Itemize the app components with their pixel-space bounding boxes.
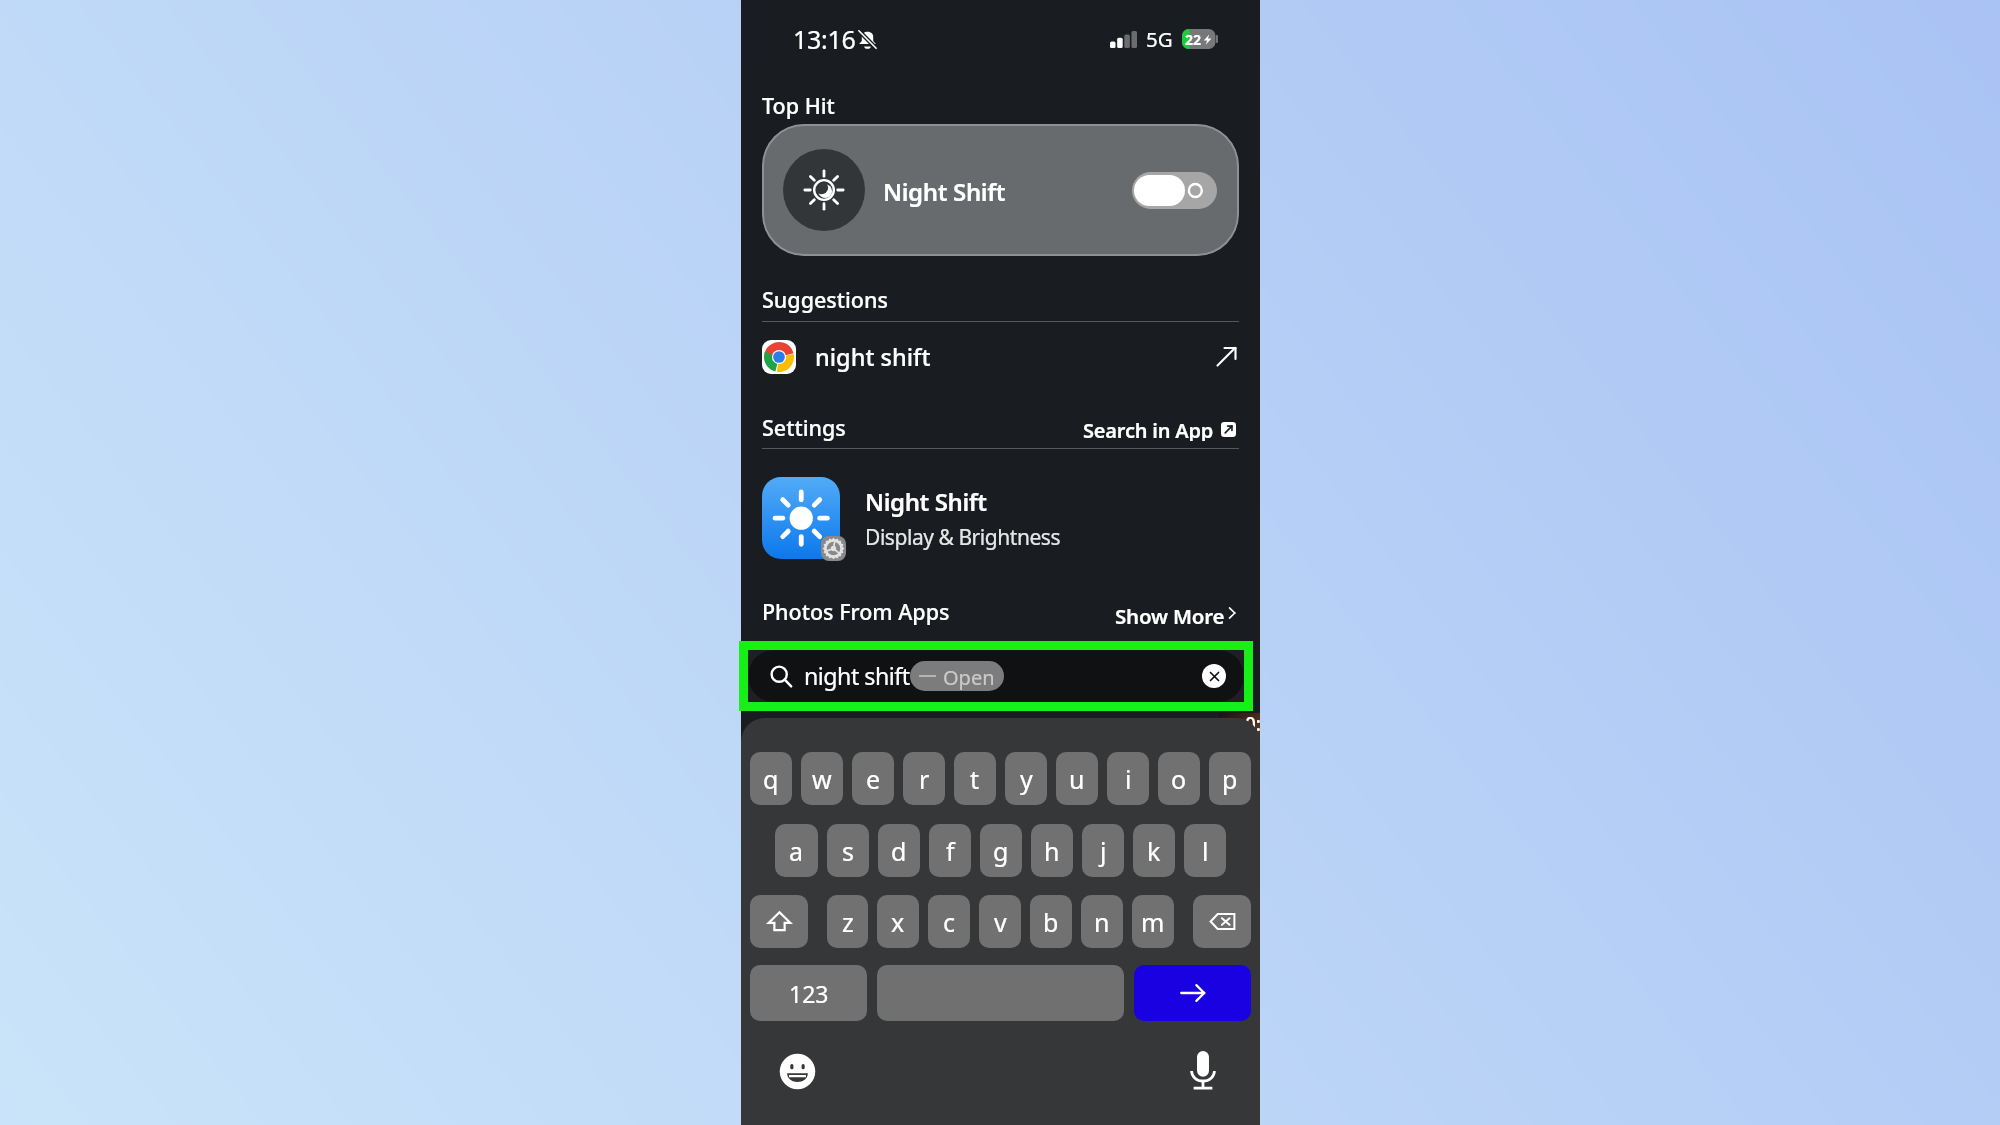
staticText: Night Shift [865, 485, 987, 518]
button[interactable]: Voice input [1190, 1051, 1216, 1090]
staticText: l [1202, 834, 1209, 868]
button[interactable]: j [1082, 824, 1124, 877]
button[interactable]: night shift [762, 339, 1239, 374]
staticText: 123 [789, 978, 829, 1009]
button[interactable]: Backspace [1193, 895, 1251, 948]
button[interactable]: x [877, 895, 919, 948]
button[interactable]: w [801, 752, 843, 805]
staticText: z [842, 905, 854, 939]
button[interactable]: e [852, 752, 894, 805]
button[interactable]: Shift [750, 895, 808, 948]
button[interactable]: Show More [1115, 602, 1239, 626]
staticText: s [842, 834, 854, 868]
staticText: o [1171, 762, 1187, 796]
staticText: j [1100, 834, 1107, 868]
button[interactable]: b [1030, 895, 1072, 948]
button[interactable]: Night Shift toggle [1132, 172, 1217, 209]
staticText: k [1147, 834, 1161, 868]
staticText: Suggestions [762, 285, 888, 314]
staticText: 5G [1146, 25, 1173, 53]
staticText: d [891, 834, 907, 868]
staticText: night shift [804, 660, 910, 692]
staticText: r [919, 762, 930, 796]
button[interactable]: c [928, 895, 970, 948]
button[interactable]: Enter [1134, 965, 1251, 1021]
staticText: Show More [1115, 602, 1225, 626]
button[interactable]: n [1081, 895, 1123, 948]
staticText: n [1094, 905, 1110, 939]
staticText: Search in App [1083, 417, 1214, 441]
button[interactable]: s [827, 824, 869, 877]
button[interactable]: k [1133, 824, 1175, 877]
button[interactable]: g [980, 824, 1022, 877]
staticText: Settings [762, 413, 846, 442]
staticText: Top Hit [762, 91, 835, 120]
button[interactable]: h [1031, 824, 1073, 877]
button[interactable]: r [903, 752, 945, 805]
staticText: w [812, 762, 832, 796]
staticText: i [1125, 762, 1132, 796]
button[interactable]: z [827, 895, 868, 948]
button[interactable]: a [775, 824, 818, 877]
button[interactable]: o [1158, 752, 1200, 805]
staticText: Photos From Apps [762, 597, 950, 626]
button[interactable]: u [1056, 752, 1098, 805]
staticText: 22 [1185, 30, 1202, 49]
staticText: m [1141, 905, 1165, 939]
button[interactable]: f [929, 824, 971, 877]
button[interactable]: Search in App [1083, 417, 1236, 441]
button[interactable]: d [878, 824, 920, 877]
staticText: g [993, 834, 1009, 868]
button[interactable]: Clear text [1202, 664, 1226, 688]
staticText: Open [943, 664, 995, 691]
button[interactable]: i [1107, 752, 1149, 805]
staticText: e [866, 762, 881, 796]
staticText: a [789, 834, 804, 868]
button[interactable]: m [1132, 895, 1174, 948]
staticText: 13:16 [793, 22, 856, 56]
button[interactable]: v [979, 895, 1021, 948]
button[interactable]: q [750, 752, 792, 805]
staticText: q [763, 762, 779, 796]
button[interactable]: 123 [750, 965, 867, 1021]
staticText: b [1043, 905, 1059, 939]
staticText: t [970, 762, 980, 796]
button[interactable]: y [1005, 752, 1047, 805]
staticText: y [1020, 762, 1033, 796]
staticText: 0: [1245, 711, 1262, 737]
button[interactable]: Space [877, 965, 1124, 1021]
button[interactable]: p [1209, 752, 1251, 805]
button[interactable]: l [1184, 824, 1226, 877]
staticText: v [994, 905, 1007, 939]
button[interactable]: night shift [748, 650, 1244, 702]
button[interactable]: Emoji [779, 1053, 816, 1090]
button[interactable]: t [954, 752, 996, 805]
button[interactable]: Night Shift [762, 476, 1239, 560]
staticText: h [1044, 834, 1060, 868]
staticText: c [943, 905, 956, 939]
staticText: u [1069, 762, 1085, 796]
staticText: p [1222, 762, 1238, 796]
staticText: f [946, 834, 955, 868]
staticText: night shift [815, 341, 931, 373]
button[interactable]: Night Shift [762, 124, 1239, 256]
staticText: Night Shift [883, 175, 1006, 208]
staticText: Display & Brightness [865, 523, 1061, 552]
staticText: x [891, 905, 905, 939]
